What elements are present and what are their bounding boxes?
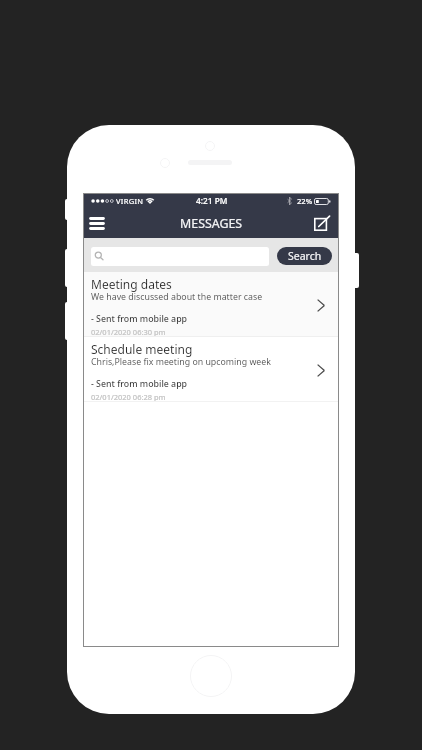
button[interactable]: Search [277,247,332,265]
staticText: 02/01/2020 06:28 pm [91,392,166,402]
staticText: 02/01/2020 06:30 pm [91,327,166,337]
button[interactable]: Menu [83,208,113,238]
staticText: Chris,Please fix meeting on upcoming wee… [91,356,271,368]
staticText: - Sent from mobile app [91,378,188,390]
staticText: Search [288,249,322,263]
button[interactable]: Search field [91,247,269,266]
staticText: MESSAGES [180,215,243,232]
button[interactable]: Meeting dates [83,272,339,336]
button[interactable]: Compose new message [309,208,339,238]
staticText: 4:21 PM [196,195,228,206]
button[interactable]: Schedule meeting [83,337,339,401]
staticText: - Sent from mobile app [91,313,188,325]
staticText: Meeting dates [91,276,172,292]
staticText: Schedule meeting [91,341,193,357]
staticText: VIRGIN [116,196,144,206]
staticText: We have discussed about the matter case [91,291,263,303]
staticText: 22% [297,196,313,206]
